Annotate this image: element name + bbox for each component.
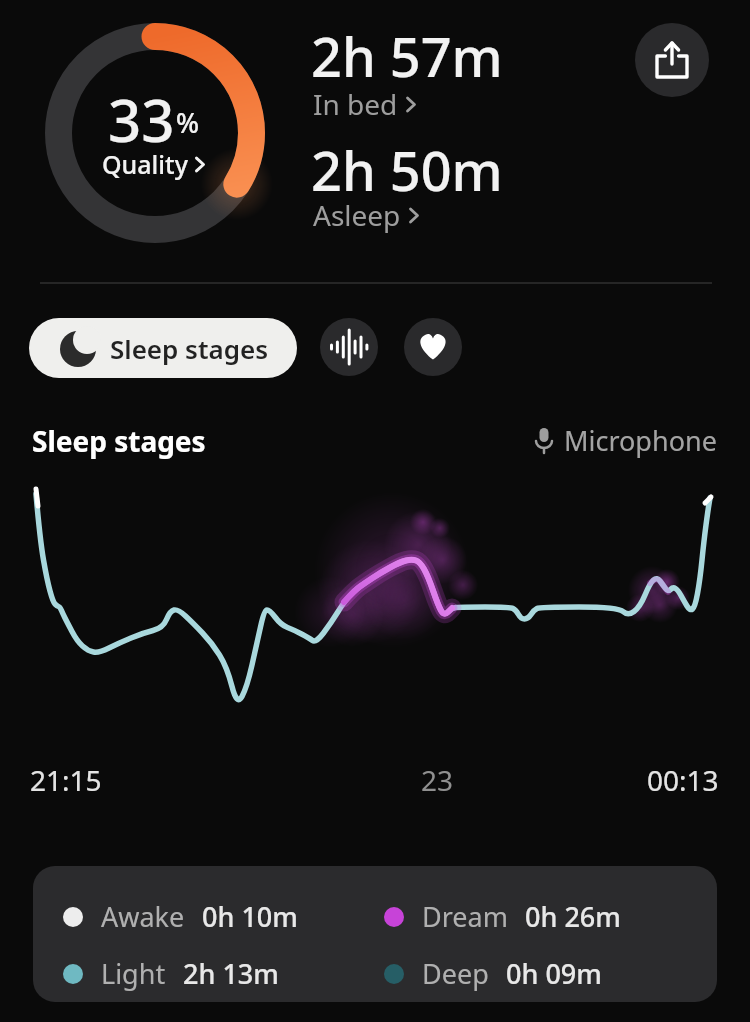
- button[interactable]: [320, 318, 378, 376]
- staticText: Light: [101, 955, 166, 992]
- staticText: Dream: [422, 898, 508, 935]
- staticText: 2h 50m: [311, 133, 503, 207]
- button[interactable]: Microphone: [534, 422, 717, 459]
- button[interactable]: In bed: [313, 85, 416, 123]
- staticText: Quality: [102, 147, 188, 181]
- staticText: Microphone: [564, 422, 717, 459]
- staticText: Sleep stages: [32, 422, 206, 460]
- staticText: Sleep stages: [110, 331, 269, 366]
- button[interactable]: Dream: [384, 898, 621, 935]
- button[interactable]: 33: [45, 23, 265, 243]
- staticText: 23: [421, 761, 454, 799]
- staticText: 0h 09m: [506, 955, 602, 992]
- staticText: 00:13: [647, 761, 719, 799]
- staticText: 0h 10m: [202, 898, 298, 935]
- button[interactable]: [635, 23, 709, 97]
- button[interactable]: Deep: [384, 955, 602, 992]
- staticText: Deep: [422, 955, 489, 992]
- staticText: 2h 13m: [183, 955, 279, 992]
- staticText: Awake: [101, 898, 185, 935]
- staticText: Asleep: [313, 196, 401, 234]
- button[interactable]: [404, 318, 462, 376]
- staticText: In bed: [313, 85, 398, 123]
- staticText: 2h 57m: [311, 19, 503, 93]
- staticText: 0h 26m: [525, 898, 621, 935]
- button[interactable]: Light: [63, 955, 279, 992]
- button[interactable]: Awake: [63, 898, 298, 935]
- staticText: 33: [108, 80, 175, 159]
- button[interactable]: Asleep: [313, 196, 419, 234]
- staticText: %: [176, 104, 200, 141]
- staticText: 21:15: [30, 761, 102, 799]
- button[interactable]: Sleep stages: [29, 318, 297, 378]
